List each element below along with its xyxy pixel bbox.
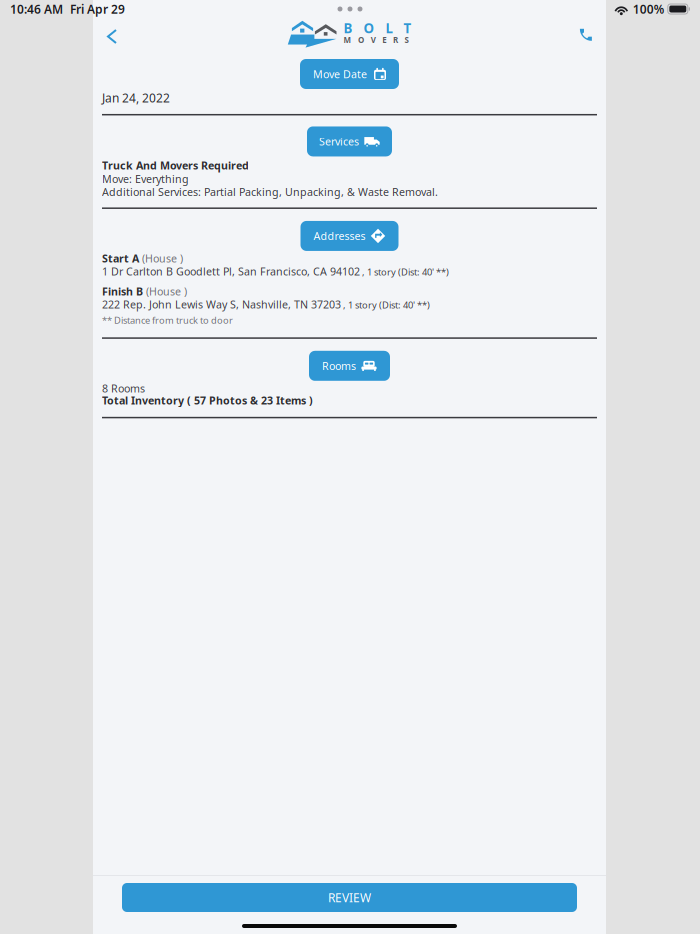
staticText: , 1 story (Dist: 40' **) xyxy=(341,299,430,311)
button[interactable]: Services xyxy=(307,126,392,156)
staticText: Move: Everything xyxy=(102,172,189,186)
button[interactable]: Move Date xyxy=(300,59,399,89)
staticText: Addresses xyxy=(313,229,365,243)
staticText: BOLT xyxy=(343,19,411,37)
staticText: Start A xyxy=(102,251,139,266)
staticText: Truck And Movers Required xyxy=(102,158,249,173)
staticText: Additional Services: Partial Packing, Un… xyxy=(102,185,438,199)
staticText: Move Date xyxy=(313,67,367,81)
staticText: 8 Rooms xyxy=(102,381,145,395)
staticText: Rooms xyxy=(322,359,356,373)
staticText: Fri Apr 29 xyxy=(70,1,125,17)
button[interactable]: REVIEW xyxy=(122,883,577,912)
staticText: , 1 story (Dist: 40' **) xyxy=(360,266,449,278)
staticText: (House ) xyxy=(142,251,183,266)
staticText: 10:46 AM xyxy=(10,1,63,17)
button[interactable]: Call xyxy=(570,19,601,50)
staticText: REVIEW xyxy=(328,889,371,905)
staticText: 222 Rep. John Lewis Way S, Nashville, TN… xyxy=(102,297,341,312)
button[interactable]: Addresses xyxy=(300,221,398,251)
staticText: (House ) xyxy=(146,284,187,299)
staticText: 1 Dr Carlton B Goodlett Pl, San Francisc… xyxy=(102,264,360,279)
staticText: ** Distance from truck to door xyxy=(102,314,233,326)
staticText: MOVERS xyxy=(343,35,408,45)
staticText: Services xyxy=(319,134,359,149)
staticText: 100% xyxy=(633,1,665,17)
button[interactable]: Rooms xyxy=(309,351,390,381)
staticText: Jan 24, 2022 xyxy=(102,90,170,106)
button[interactable]: Back xyxy=(98,19,124,50)
staticText: Total Inventory ( 57 Photos & 23 Items ) xyxy=(102,393,313,407)
staticText: Finish B xyxy=(102,284,143,299)
